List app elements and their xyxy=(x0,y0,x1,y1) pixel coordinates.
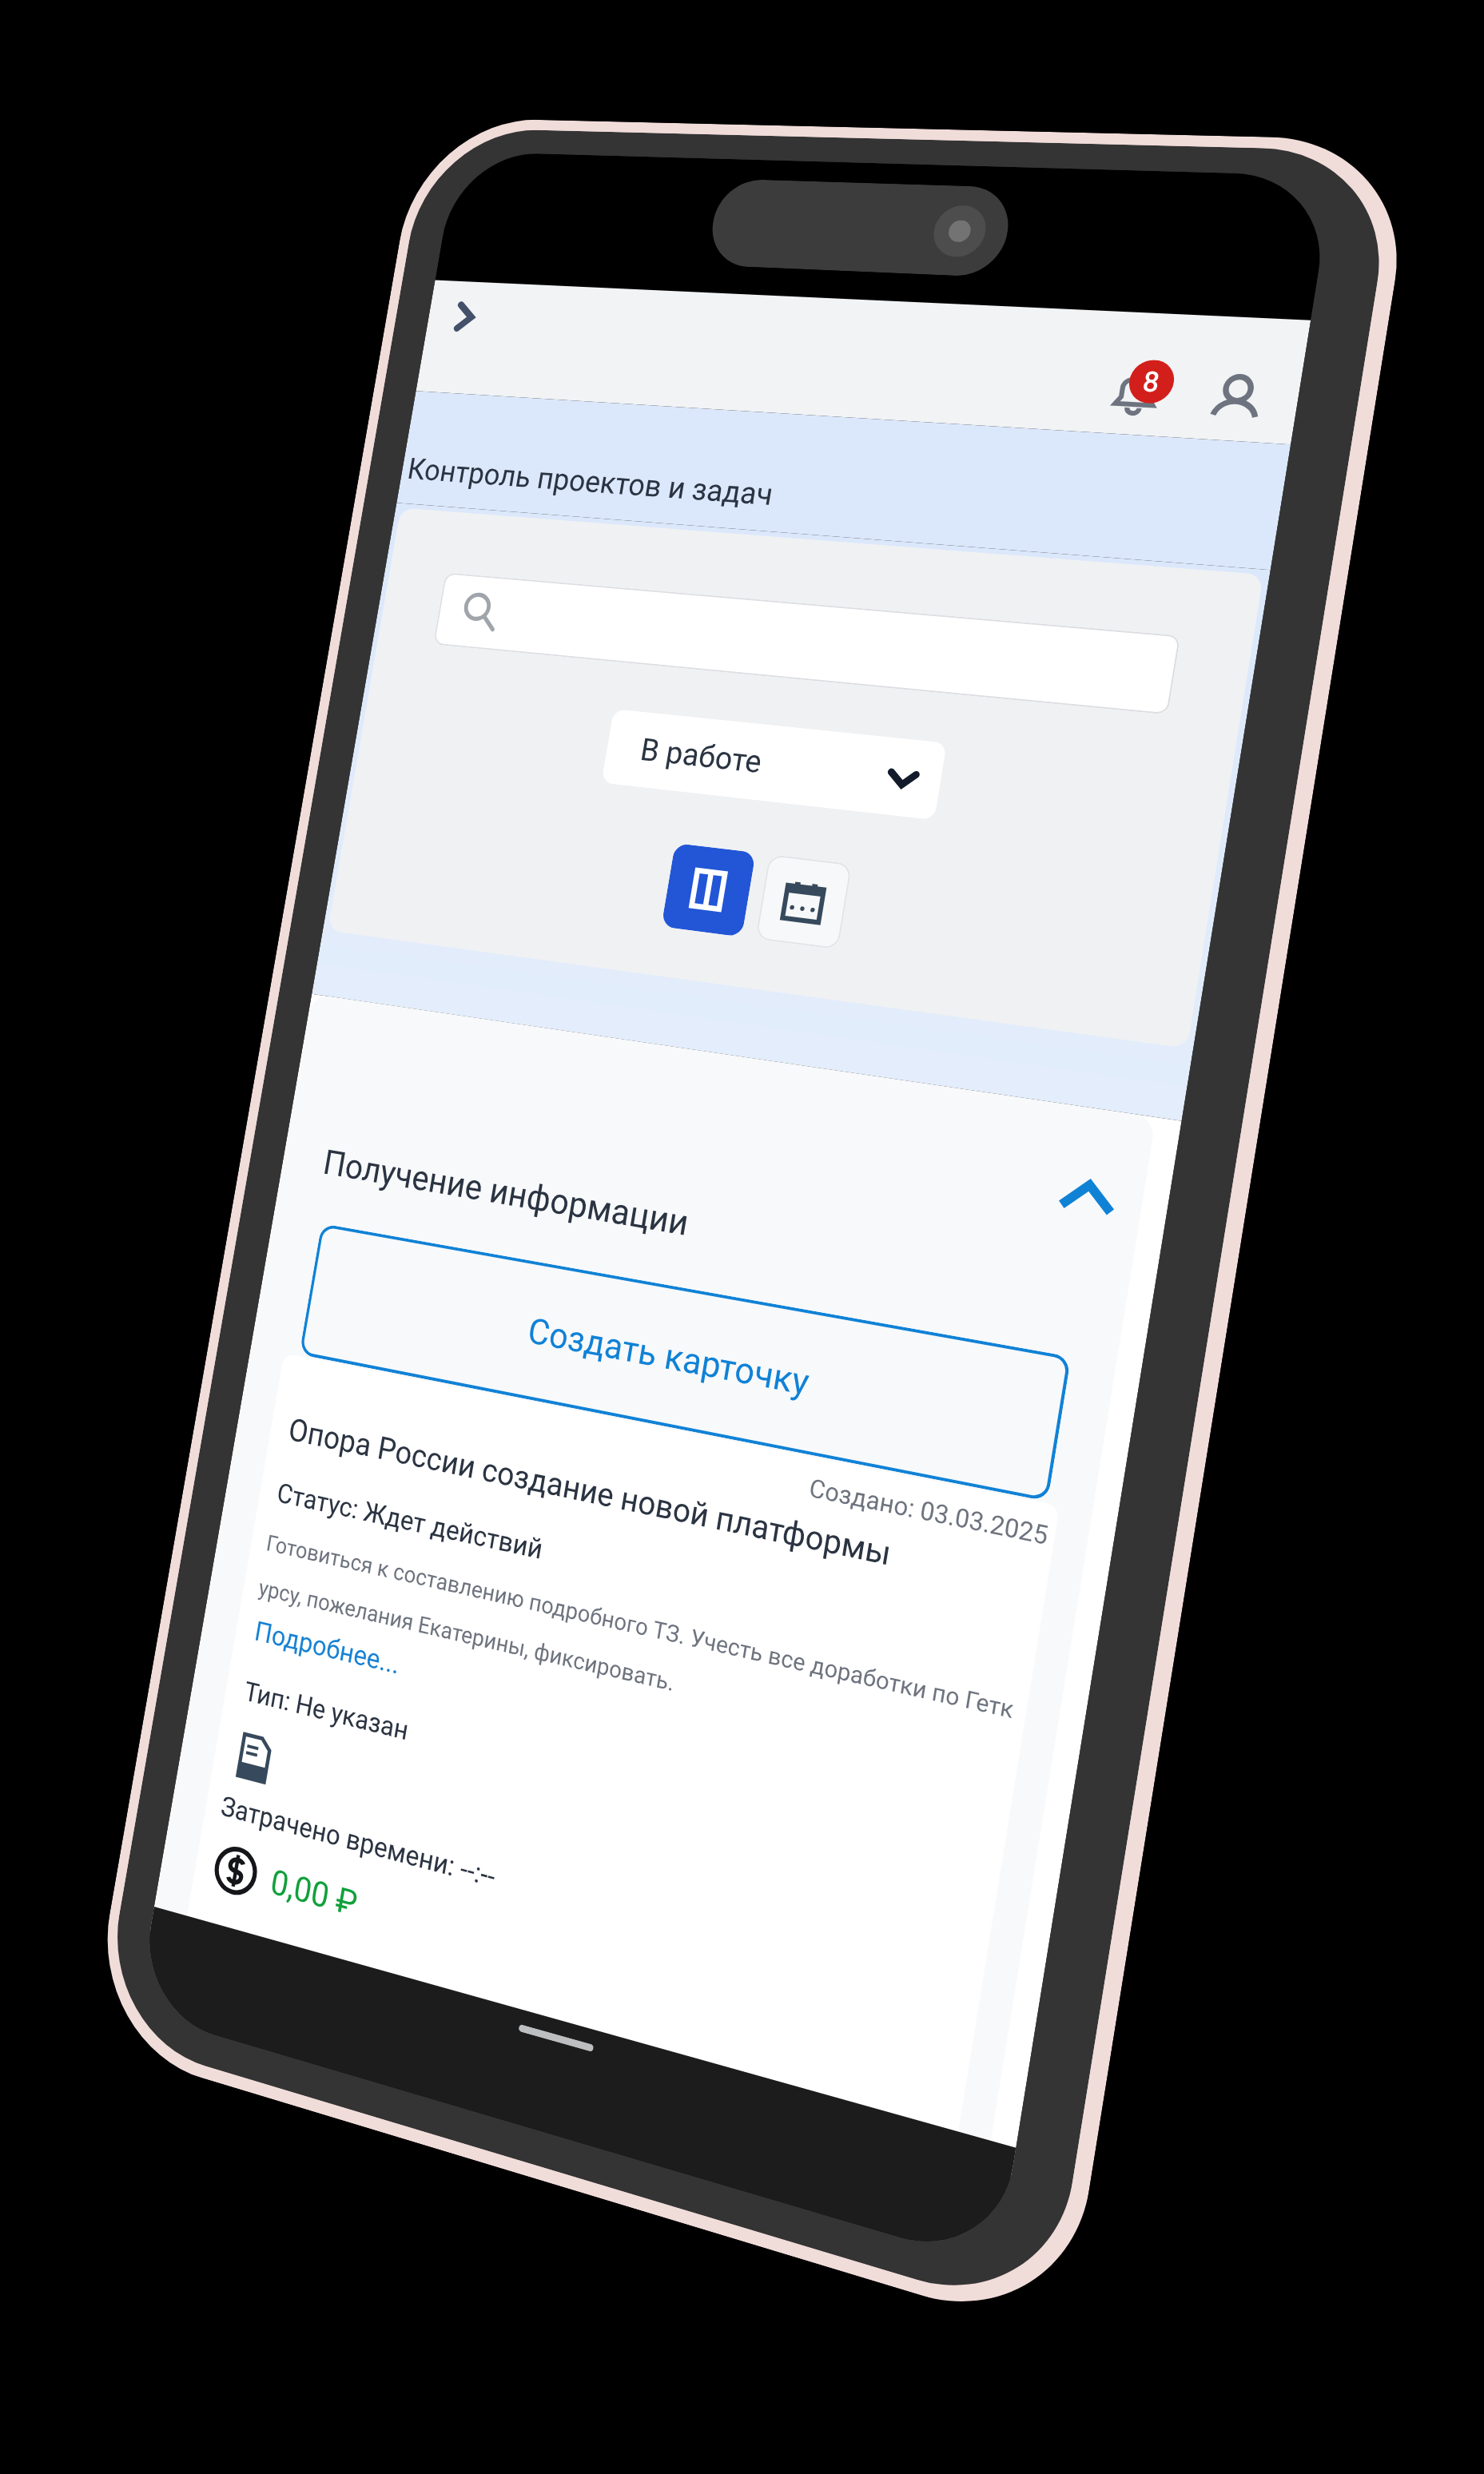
button[interactable]: В работе xyxy=(601,709,947,820)
button[interactable]: Notifications xyxy=(1088,352,1183,437)
button[interactable] xyxy=(433,573,1180,715)
staticText: Тип: Не указан xyxy=(242,1675,411,1746)
staticText: Статус: Ждет действий xyxy=(275,1477,545,1566)
staticText: 0,00 ₽ xyxy=(268,1861,360,1925)
button[interactable]: Board view xyxy=(661,843,756,937)
staticText: Создано: 03.03.2025 xyxy=(807,1473,1051,1550)
staticText: Создать карточку xyxy=(525,1309,813,1404)
staticText: Получение информации xyxy=(320,1142,692,1244)
staticText: Затрачено времени: --:-- xyxy=(219,1790,498,1894)
button[interactable]: Calendar view xyxy=(755,854,852,950)
staticText: Готовиться к составлению подробного ТЗ. … xyxy=(257,1530,1020,1775)
button[interactable]: Опора России создание новой платформы xyxy=(185,1353,1060,2146)
staticText: В работе xyxy=(638,731,765,781)
staticText: Контроль проектов и задач xyxy=(405,451,776,512)
button[interactable]: Open menu xyxy=(429,283,500,351)
staticText: Подробнее... xyxy=(252,1615,403,1681)
staticText: 8 xyxy=(1141,365,1162,398)
button[interactable]: Collapse section xyxy=(1035,1145,1141,1251)
staticText: Опора России создание новой платформы xyxy=(286,1411,894,1573)
button[interactable]: Создать карточку xyxy=(299,1223,1071,1502)
button[interactable]: Profile xyxy=(1188,357,1285,443)
